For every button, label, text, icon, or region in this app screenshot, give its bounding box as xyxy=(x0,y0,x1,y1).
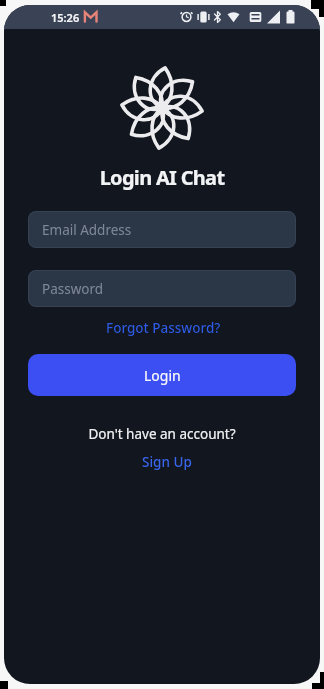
button[interactable]: Email Address xyxy=(28,211,296,248)
staticText: Forgot Password? xyxy=(106,319,221,337)
staticText: Email Address xyxy=(42,221,132,239)
button[interactable]: Password xyxy=(28,270,296,307)
staticText: Password xyxy=(42,280,104,298)
button[interactable]: Login xyxy=(28,354,296,396)
staticText: Login AI Chat xyxy=(4,164,320,191)
staticText: Login xyxy=(144,366,181,385)
staticText: Sign Up xyxy=(142,453,192,471)
staticText: 15:26 xyxy=(51,10,80,25)
button[interactable]: Sign Up xyxy=(138,449,196,475)
button[interactable]: Forgot Password? xyxy=(102,315,225,341)
staticText: Don't have an account? xyxy=(4,425,320,443)
